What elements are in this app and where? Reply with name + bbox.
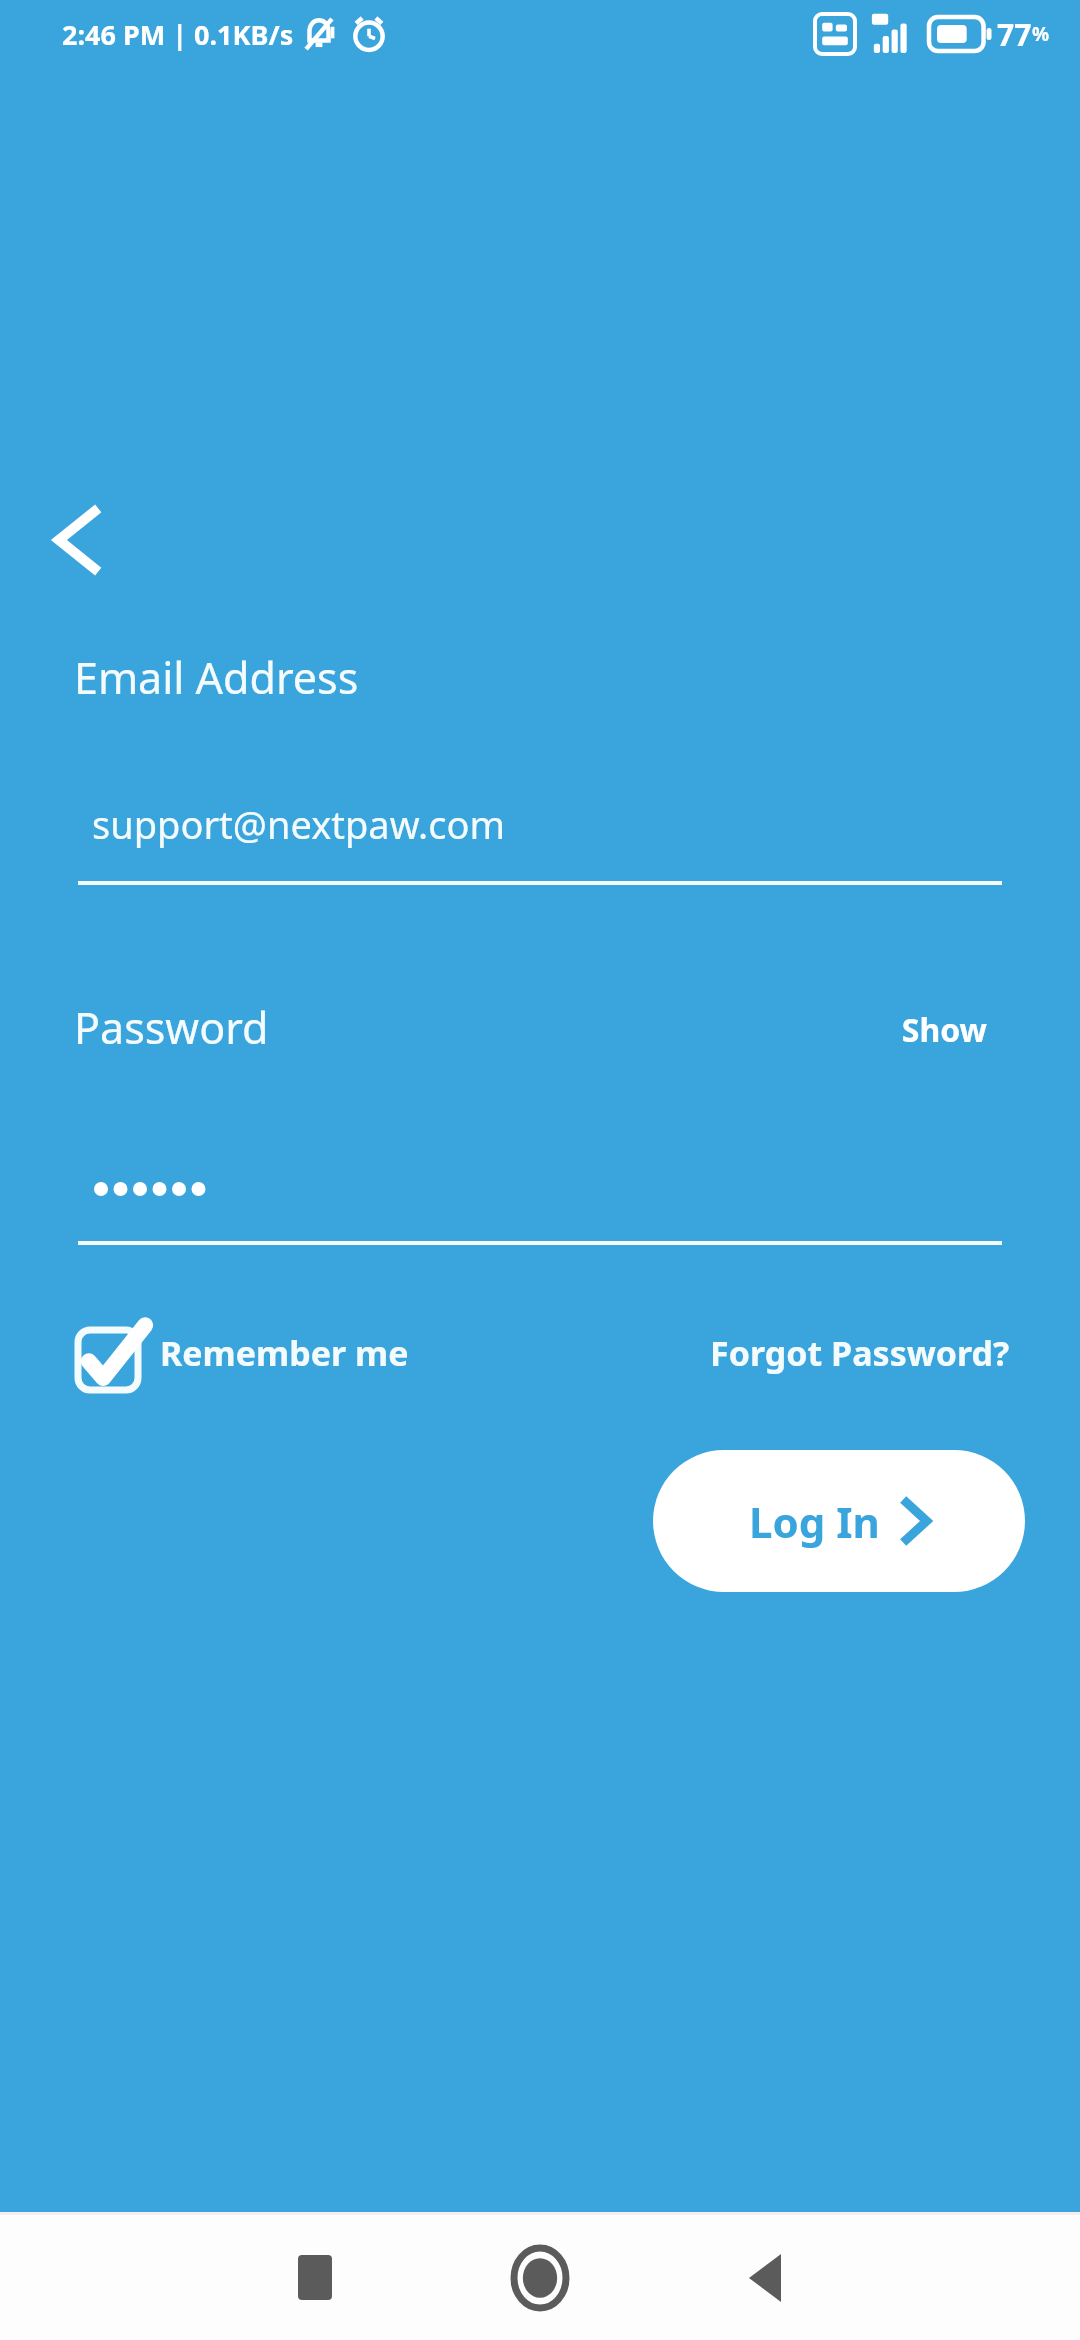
- button[interactable]: Back: [34, 490, 122, 590]
- staticText: Show: [901, 1008, 987, 1052]
- staticText: 77: [997, 14, 1032, 55]
- staticText: support@nextpaw.com: [92, 798, 505, 850]
- button[interactable]: Log In: [653, 1450, 1025, 1592]
- staticText: 2:46 PM | 0.1KB/s: [62, 16, 294, 53]
- staticText: Log In: [749, 1493, 880, 1550]
- button[interactable]: Remember me: [66, 1308, 409, 1398]
- button[interactable]: support@nextpaw.com: [78, 770, 1002, 885]
- staticText: Remember me: [160, 1330, 409, 1376]
- button[interactable]: Show: [874, 995, 1014, 1065]
- button[interactable]: Back: [700, 2215, 830, 2340]
- button[interactable]: [78, 1130, 1002, 1245]
- staticText: Password: [74, 998, 269, 1057]
- staticText: Forgot Password?: [710, 1330, 1010, 1376]
- button[interactable]: Forgot Password?: [666, 1308, 1010, 1398]
- button[interactable]: Home: [475, 2215, 605, 2340]
- staticText: %: [1032, 21, 1050, 47]
- staticText: Email Address: [74, 648, 359, 707]
- button[interactable]: Recent apps: [250, 2215, 380, 2340]
